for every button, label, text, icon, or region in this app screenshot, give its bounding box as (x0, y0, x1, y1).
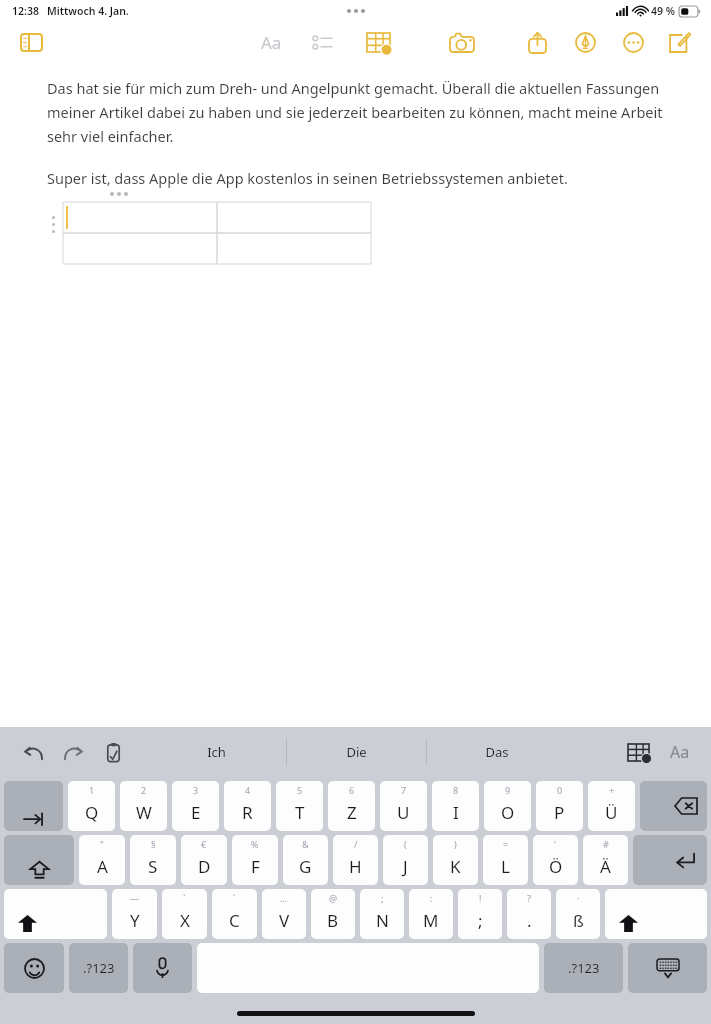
button[interactable]: Insert table (358, 22, 398, 62)
button[interactable]: " (79, 835, 125, 885)
button[interactable]: Dictate (133, 943, 192, 993)
button[interactable]: More (614, 23, 652, 61)
staticText: I (453, 801, 459, 824)
staticText: · (577, 892, 580, 904)
button[interactable]: 3 (172, 781, 219, 831)
button[interactable]: Table options (621, 735, 655, 769)
button[interactable]: + (588, 781, 635, 831)
button[interactable]: 6 (328, 781, 375, 831)
staticText: 6 (349, 784, 355, 796)
staticText: / (354, 838, 358, 850)
button[interactable]: Shift (4, 889, 107, 939)
button[interactable]: Formatting (663, 735, 697, 769)
button[interactable]: 2 (120, 781, 167, 831)
staticText: S (148, 855, 158, 878)
staticText: Das hat sie für mich zum Dreh- und Angel… (47, 78, 675, 146)
staticText: " (100, 838, 104, 850)
staticText: ; (381, 892, 384, 904)
staticText: Z (347, 801, 357, 824)
button[interactable]: ´ (212, 889, 257, 939)
button[interactable]: 5 (276, 781, 323, 831)
staticText: X (180, 909, 190, 932)
button[interactable]: Share (518, 23, 556, 61)
staticText: 8 (453, 784, 459, 796)
button[interactable]: Sidebar (14, 25, 48, 59)
staticText: G (299, 855, 312, 878)
button[interactable]: Ich (146, 734, 286, 770)
staticText: 3 (193, 784, 199, 796)
staticText: ! (479, 892, 482, 904)
staticText: @ (329, 892, 338, 904)
button[interactable]: ! (458, 889, 502, 939)
button[interactable]: Emoji (4, 943, 64, 993)
staticText: ´ (233, 892, 236, 904)
button[interactable]: ' (533, 835, 578, 885)
button[interactable]: Checklist (303, 23, 341, 61)
button[interactable]: Backspace (640, 781, 707, 831)
button[interactable]: 1 (68, 781, 115, 831)
staticText: ( (404, 838, 407, 850)
button[interactable]: / (333, 835, 378, 885)
staticText: Ä (600, 855, 611, 878)
button[interactable]: Shift (605, 889, 707, 939)
staticText: % (251, 838, 259, 850)
button[interactable] (63, 202, 371, 264)
button[interactable]: Die (287, 734, 426, 770)
button[interactable]: @ (311, 889, 355, 939)
staticText: U (397, 801, 410, 824)
button[interactable]: Camera (442, 22, 482, 62)
staticText: Mittwoch 4. Jan. (47, 4, 129, 18)
staticText: 7 (401, 784, 407, 796)
button[interactable]: .?123 (544, 943, 623, 993)
button[interactable]: % (232, 835, 278, 885)
staticText: § (151, 838, 156, 850)
staticText: Aa (261, 31, 282, 54)
button[interactable]: € (181, 835, 227, 885)
button[interactable]: — (112, 889, 157, 939)
button[interactable]: # (583, 835, 628, 885)
button[interactable]: 8 (432, 781, 479, 831)
button[interactable]: ? (507, 889, 551, 939)
staticText: : (430, 892, 433, 904)
button[interactable]: Redo (56, 735, 90, 769)
staticText: … (280, 892, 288, 904)
button[interactable]: : (409, 889, 453, 939)
staticText: 12:38 (12, 4, 39, 18)
button[interactable]: & (283, 835, 328, 885)
button[interactable]: Text format (252, 23, 290, 61)
staticText: .?123 (83, 959, 115, 977)
button[interactable]: ; (360, 889, 404, 939)
staticText: ? (527, 892, 531, 904)
button[interactable]: Markup (566, 23, 604, 61)
staticText: Das (485, 743, 509, 761)
button[interactable]: Caps lock (4, 835, 74, 885)
staticText: 0 (557, 784, 563, 796)
button[interactable]: … (262, 889, 306, 939)
staticText: T (295, 801, 305, 824)
button[interactable]: Das (427, 734, 566, 770)
staticText: D (198, 855, 211, 878)
staticText: Q (85, 801, 99, 824)
button[interactable]: ` (162, 889, 207, 939)
button[interactable]: · (556, 889, 600, 939)
button[interactable]: 7 (380, 781, 427, 831)
button[interactable]: .?123 (69, 943, 128, 993)
button[interactable]: ( (383, 835, 428, 885)
button[interactable]: Undo (16, 735, 50, 769)
button[interactable]: Tab (4, 781, 63, 831)
staticText: 9 (505, 784, 511, 796)
button[interactable]: ) (433, 835, 478, 885)
button[interactable]: 4 (224, 781, 271, 831)
staticText: W (136, 801, 152, 824)
button[interactable]: = (483, 835, 528, 885)
button[interactable]: Return (633, 835, 707, 885)
button[interactable]: 0 (536, 781, 583, 831)
button[interactable]: Paste (96, 735, 130, 769)
button[interactable]: Hide keyboard (628, 943, 707, 993)
button[interactable]: 9 (484, 781, 531, 831)
staticText: .?123 (568, 959, 600, 977)
button[interactable]: § (130, 835, 176, 885)
button[interactable]: New note (661, 23, 699, 61)
staticText: Die (346, 743, 367, 761)
